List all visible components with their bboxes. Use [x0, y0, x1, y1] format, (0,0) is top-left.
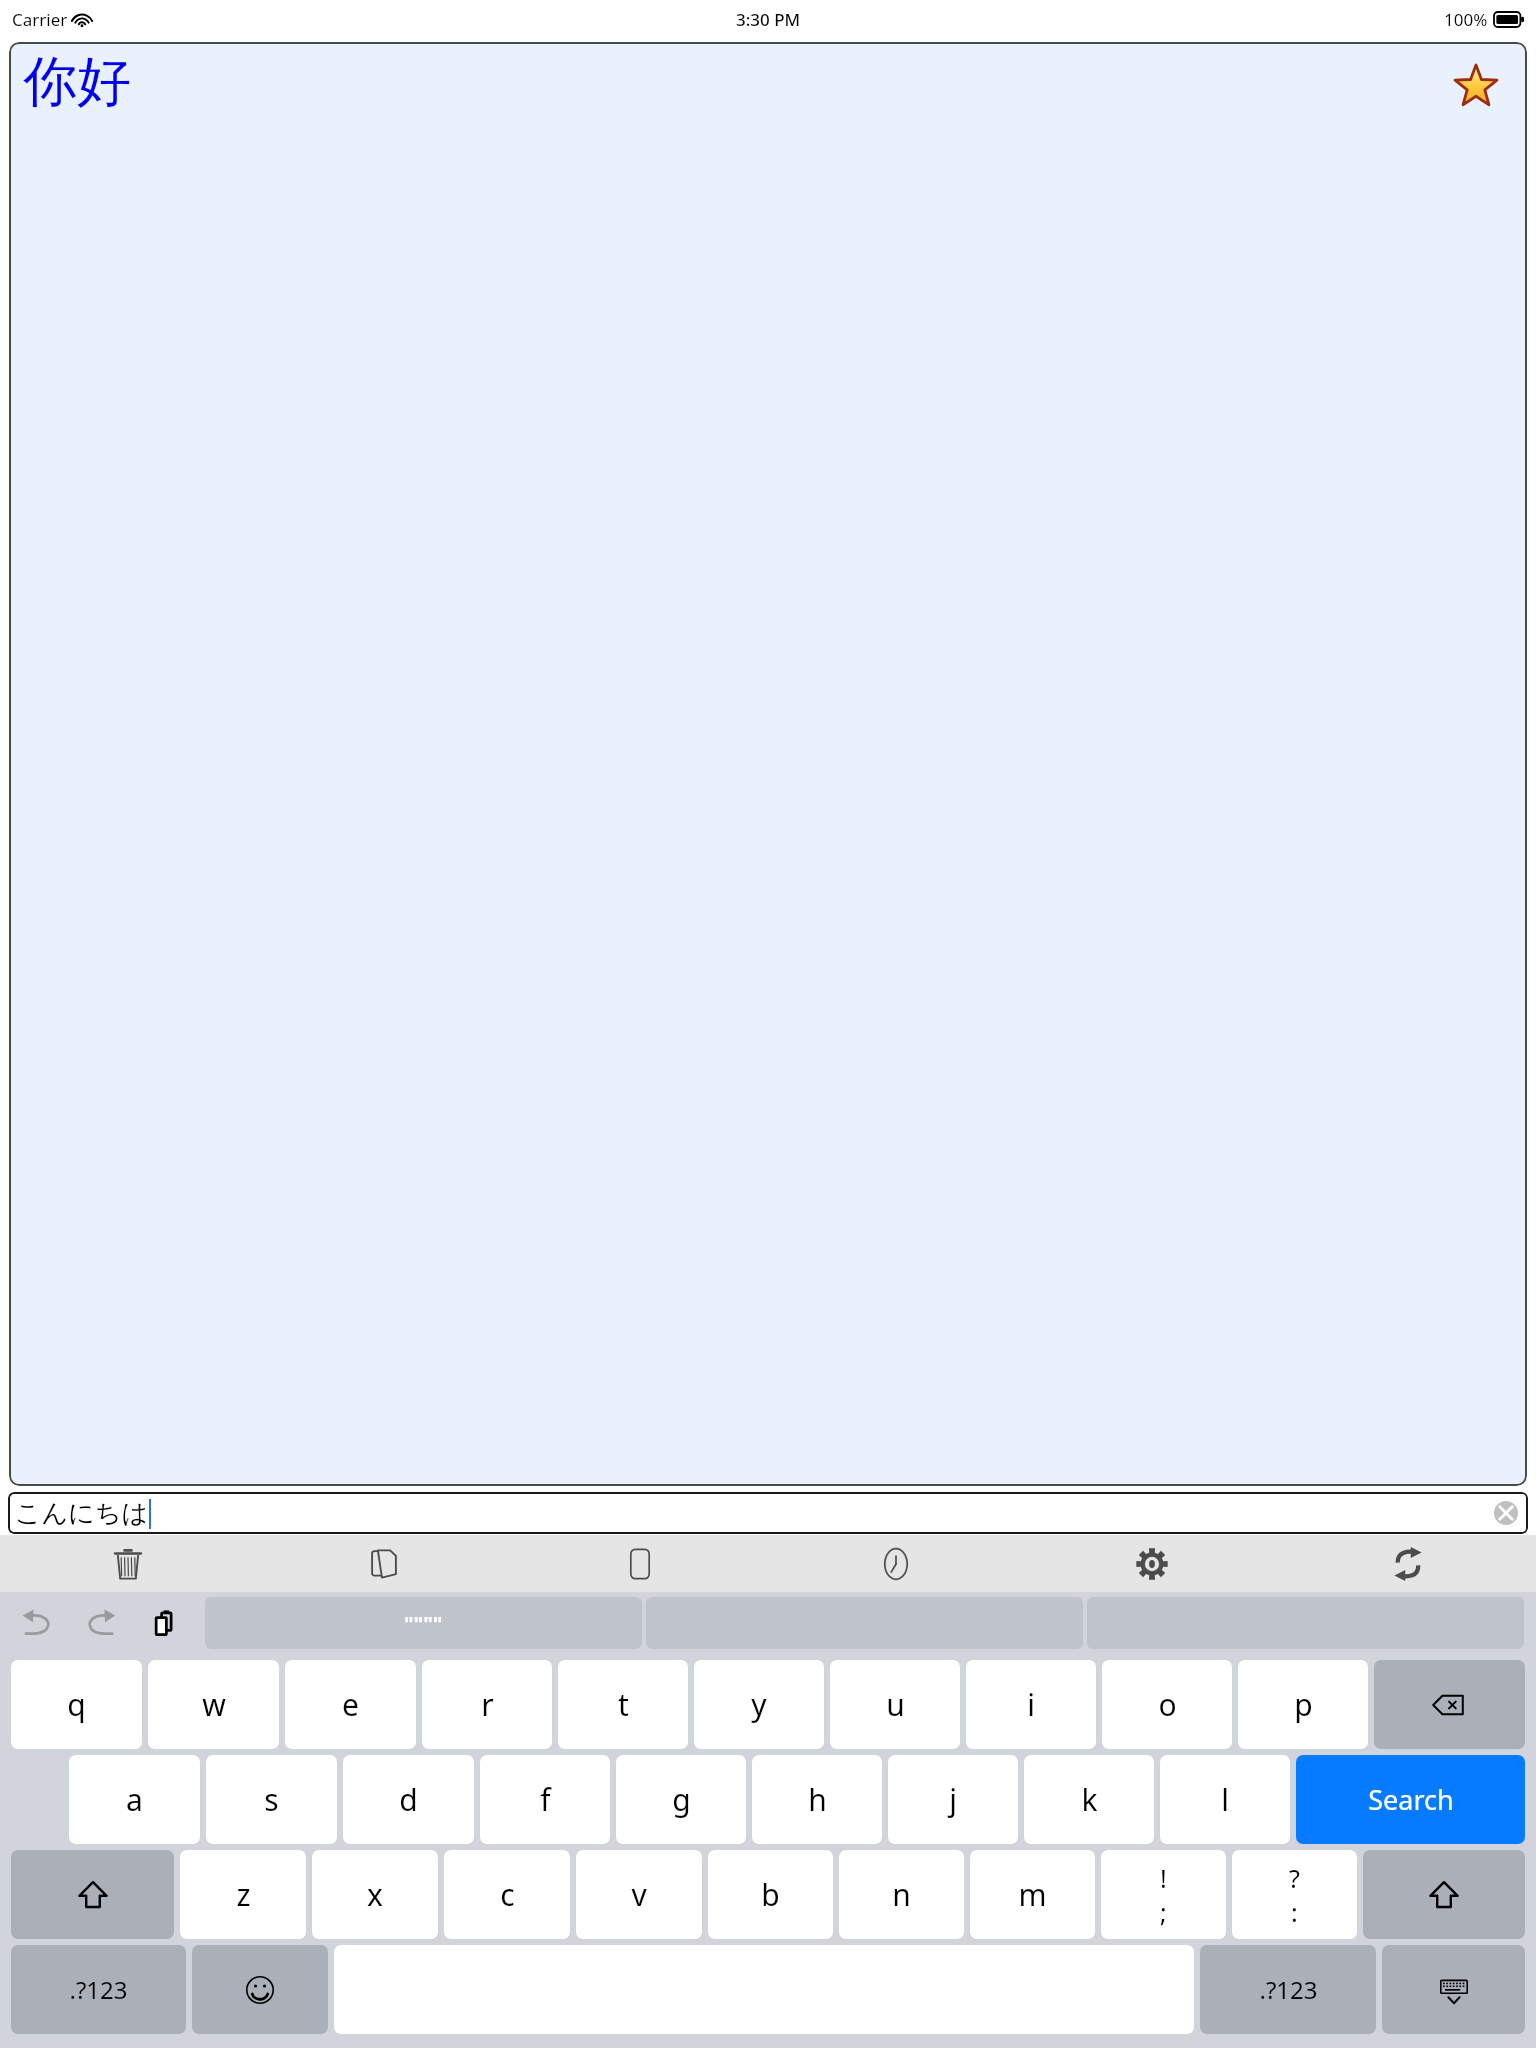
button[interactable]: z — [180, 1850, 306, 1939]
staticText: w — [202, 1684, 226, 1725]
button[interactable]: Shift — [1363, 1850, 1525, 1939]
button[interactable]: Search — [1296, 1755, 1525, 1844]
button[interactable]: b — [708, 1850, 833, 1939]
staticText: s — [264, 1779, 279, 1820]
button[interactable]: w — [148, 1660, 279, 1749]
button[interactable]: f — [480, 1755, 610, 1844]
button[interactable]: o — [1102, 1660, 1232, 1749]
staticText: f — [540, 1779, 551, 1820]
button[interactable]: j — [888, 1755, 1018, 1844]
button[interactable]: History — [768, 1535, 1024, 1592]
button[interactable]: e — [285, 1660, 416, 1749]
staticText: t — [618, 1684, 629, 1725]
button[interactable]: Clear text — [1494, 1501, 1518, 1525]
button[interactable]: s — [206, 1755, 337, 1844]
button[interactable]: こんにちは — [8, 1492, 1528, 1534]
staticText: e — [342, 1684, 359, 1725]
staticText: o — [1158, 1684, 1177, 1725]
button[interactable]: ? — [1232, 1850, 1357, 1939]
staticText: 100% — [1444, 8, 1488, 31]
staticText: h — [808, 1779, 827, 1820]
button[interactable]: .?123 — [11, 1945, 186, 2034]
staticText: r — [481, 1684, 494, 1725]
button[interactable]: Paste — [133, 1592, 197, 1654]
button[interactable]: 你好 — [9, 42, 1527, 1486]
button[interactable]: Delete — [0, 1535, 256, 1592]
staticText: z — [236, 1874, 251, 1915]
staticText: v — [631, 1874, 647, 1915]
staticText: ! — [1160, 1861, 1167, 1895]
button[interactable]: m — [970, 1850, 1095, 1939]
button[interactable]: v — [576, 1850, 702, 1939]
staticText: """" — [404, 1610, 443, 1637]
staticText: : — [1291, 1895, 1298, 1929]
staticText: Carrier — [12, 8, 68, 31]
button[interactable]: Shift — [11, 1850, 174, 1939]
staticText: i — [1027, 1684, 1035, 1725]
staticText: j — [949, 1779, 957, 1820]
button[interactable]: h — [752, 1755, 882, 1844]
staticText: l — [1221, 1779, 1229, 1820]
button[interactable]: Emoji — [192, 1945, 328, 2034]
button[interactable]: x — [312, 1850, 438, 1939]
staticText: m — [1018, 1874, 1047, 1915]
button[interactable]: Font — [512, 1535, 768, 1592]
button[interactable]: r — [422, 1660, 552, 1749]
staticText: ? — [1289, 1861, 1300, 1895]
button[interactable]: Redo — [69, 1592, 133, 1654]
button[interactable]: d — [343, 1755, 474, 1844]
staticText: Search — [1368, 1781, 1454, 1818]
button[interactable]: Settings — [1024, 1535, 1280, 1592]
button[interactable]: i — [966, 1660, 1096, 1749]
button[interactable]: ! — [1101, 1850, 1226, 1939]
button[interactable]: Undo — [5, 1592, 69, 1654]
button[interactable]: q — [11, 1660, 142, 1749]
button[interactable]: a — [69, 1755, 200, 1844]
staticText: x — [367, 1874, 383, 1915]
staticText: .?123 — [1259, 1973, 1318, 2006]
staticText: .?123 — [69, 1973, 128, 2006]
staticText: k — [1081, 1779, 1098, 1820]
staticText: 你好 — [23, 48, 131, 116]
staticText: こんにちは — [15, 1497, 149, 1530]
staticText: d — [399, 1779, 418, 1820]
button[interactable]: """" — [205, 1597, 642, 1649]
staticText: b — [761, 1874, 780, 1915]
button[interactable]: k — [1024, 1755, 1154, 1844]
staticText: g — [672, 1779, 691, 1820]
button[interactable]: Repeat — [1280, 1535, 1536, 1592]
button[interactable]: Backspace — [1374, 1660, 1525, 1749]
staticText: n — [892, 1874, 911, 1915]
staticText: a — [126, 1779, 143, 1820]
button[interactable]: g — [616, 1755, 746, 1844]
button[interactable]: y — [694, 1660, 824, 1749]
button[interactable]: n — [839, 1850, 964, 1939]
other: Favorite star — [1453, 64, 1499, 110]
button[interactable]: t — [558, 1660, 688, 1749]
staticText: c — [500, 1874, 515, 1915]
button[interactable]: c — [444, 1850, 570, 1939]
button[interactable]: Hide keyboard — [1382, 1945, 1525, 2034]
button[interactable]: p — [1238, 1660, 1368, 1749]
staticText: 3:30 PM — [736, 8, 801, 31]
staticText: p — [1294, 1684, 1313, 1725]
button[interactable]: u — [830, 1660, 960, 1749]
button[interactable]: Copy — [256, 1535, 512, 1592]
button[interactable]: .?123 — [1200, 1945, 1376, 2034]
staticText: u — [886, 1684, 905, 1725]
staticText: ; — [1160, 1895, 1167, 1929]
button[interactable]: l — [1160, 1755, 1290, 1844]
staticText: y — [751, 1684, 767, 1725]
staticText: q — [67, 1684, 86, 1725]
